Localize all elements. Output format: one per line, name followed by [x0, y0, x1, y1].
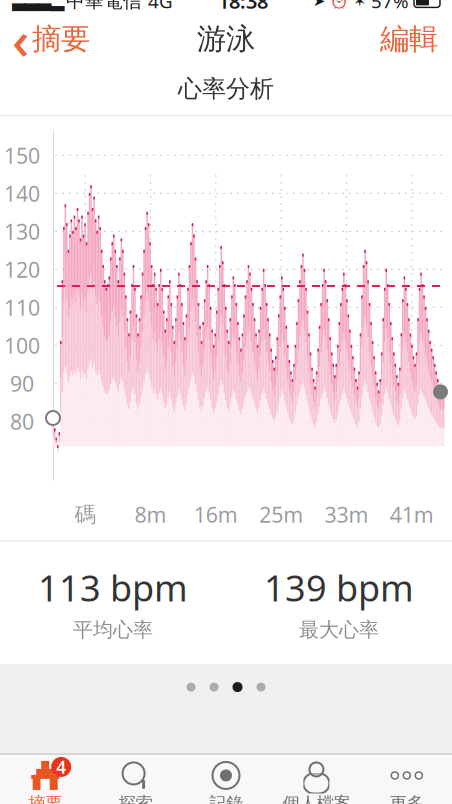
staticText: 編輯 — [380, 21, 438, 57]
staticText: 113 bpm — [38, 564, 188, 611]
button[interactable]: 探索 — [90, 755, 181, 804]
staticText: 140 — [4, 179, 40, 207]
staticText: ➤ — [313, 0, 325, 9]
staticText: 100 — [4, 331, 40, 359]
button[interactable]: 編輯 — [366, 16, 452, 62]
staticText: 游泳 — [197, 21, 255, 57]
button[interactable]: 更多 — [362, 755, 452, 804]
staticText: 平均心率 — [73, 617, 153, 642]
staticText: 16m — [194, 500, 238, 529]
staticText: 120 — [4, 255, 40, 283]
staticText: 18:38 — [218, 0, 268, 14]
staticText: 139 bpm — [264, 564, 414, 611]
staticText: 41m — [390, 500, 434, 529]
staticText: 25m — [259, 500, 303, 529]
staticText: 記錄 — [209, 793, 243, 804]
staticText: 130 — [4, 217, 40, 245]
staticText: ▃▃▃▂ — [12, 0, 64, 11]
staticText: 150 — [4, 141, 40, 169]
staticText: 心率分析 — [178, 74, 274, 103]
button[interactable]: ‹ — [0, 16, 102, 62]
staticText: 碼 — [75, 501, 96, 528]
staticText: ✶ — [353, 0, 366, 10]
staticText: 摘要 — [32, 21, 90, 57]
staticText: ⏰ — [330, 0, 348, 9]
staticText: 最大心率 — [299, 617, 379, 642]
staticText: 4 — [56, 755, 66, 778]
button[interactable]: 4 — [0, 755, 90, 804]
staticText: 中華電信 — [66, 0, 142, 12]
staticText: 90 — [10, 369, 34, 397]
staticText: 110 — [4, 293, 40, 321]
staticText: 8m — [134, 500, 166, 529]
staticText: 80 — [10, 407, 34, 435]
staticText: 摘要 — [28, 793, 62, 804]
staticText: 個人檔案 — [282, 793, 350, 804]
button[interactable]: 個人檔案 — [271, 755, 362, 804]
staticText: 4G — [148, 0, 173, 13]
staticText: 探索 — [119, 793, 153, 804]
staticText: 57% — [371, 0, 409, 13]
button[interactable]: 記錄 — [181, 755, 271, 804]
staticText: 更多 — [390, 793, 424, 804]
staticText: ‹ — [12, 3, 29, 74]
staticText: 33m — [324, 500, 368, 529]
